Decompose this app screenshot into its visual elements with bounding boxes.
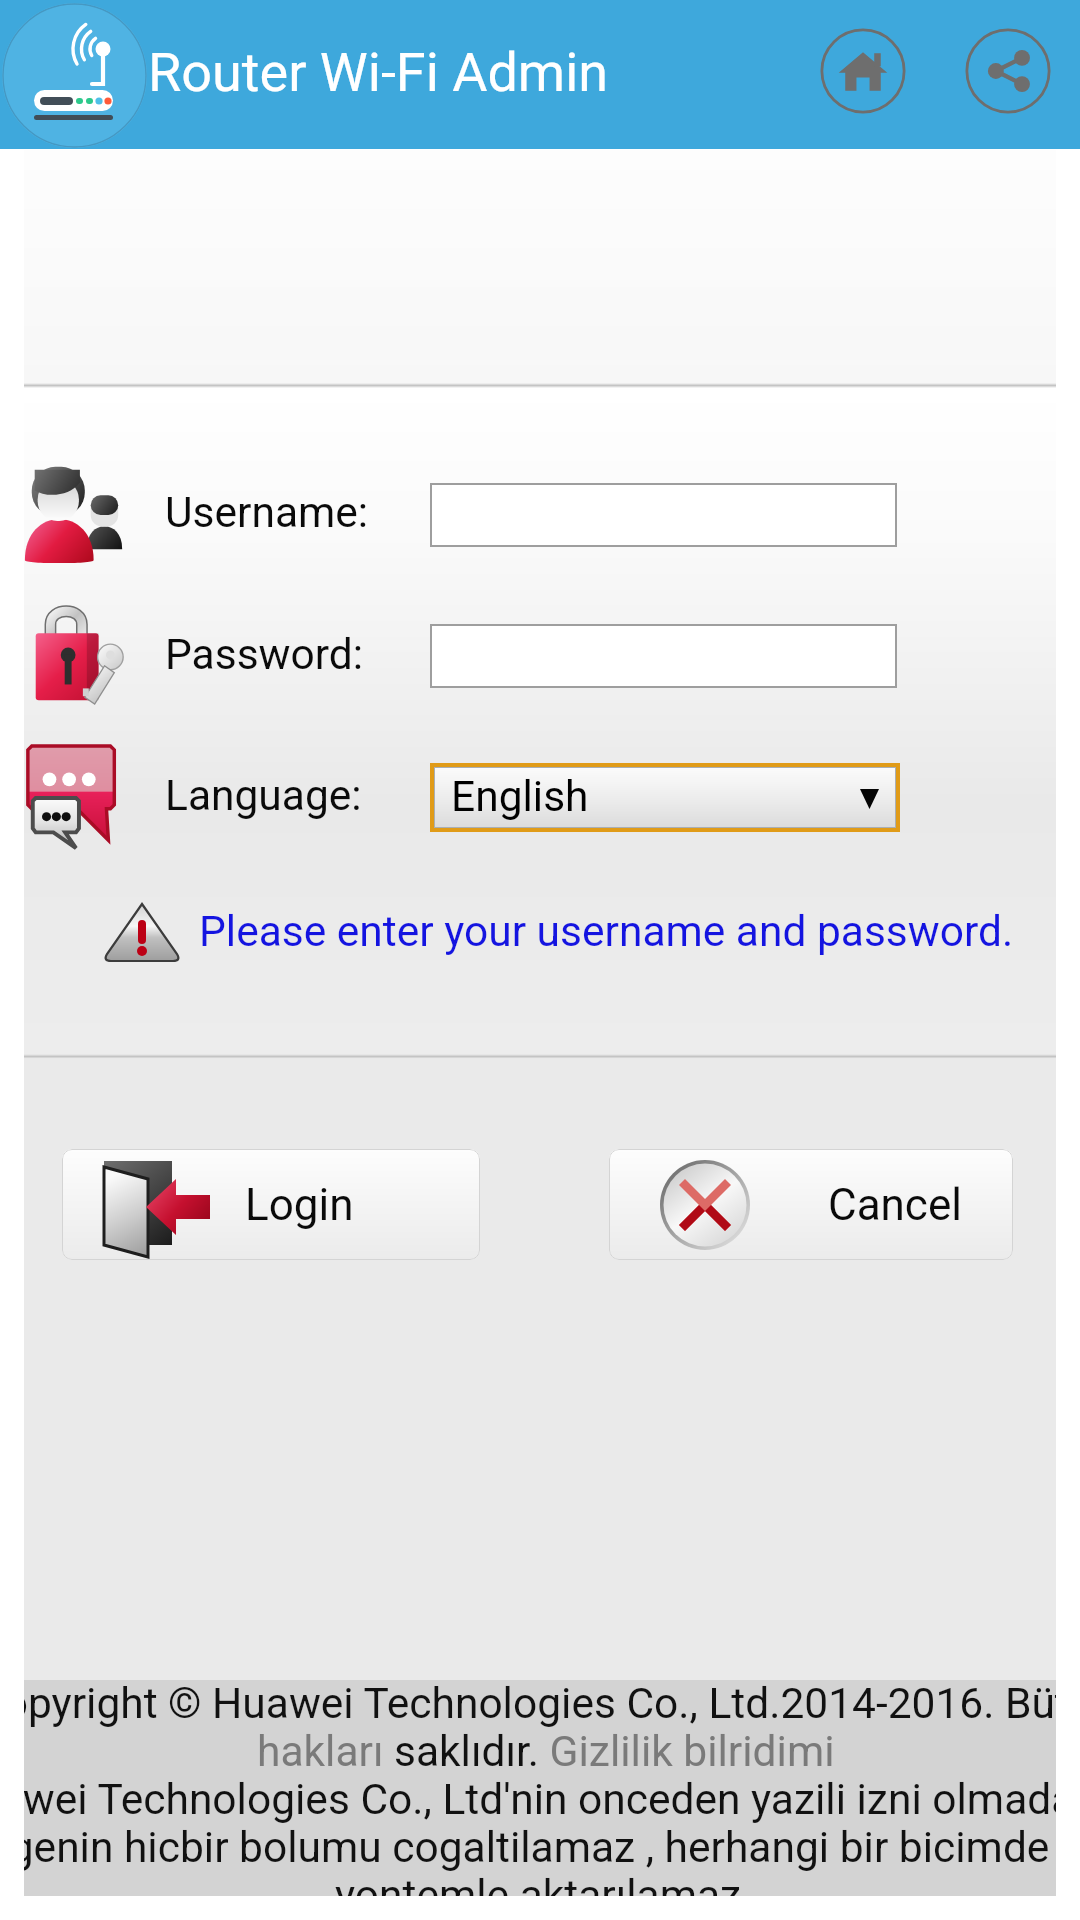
button[interactable]: Text field — [430, 483, 897, 547]
staticText: Login — [245, 1179, 354, 1231]
staticText: hakları saklıdır. Gizlilik bilridimi — [257, 1727, 835, 1777]
button[interactable]: Share — [960, 23, 1056, 119]
staticText: English — [451, 772, 589, 822]
button[interactable]: Login — [62, 1149, 480, 1260]
staticText: belgenin hicbir bolumu cogaltilamaz , he… — [24, 1823, 1056, 1873]
staticText: Router Wi-Fi Admin — [148, 41, 609, 104]
button[interactable]: Text field — [430, 624, 897, 688]
staticText: Cancel — [828, 1179, 962, 1231]
staticText: yontemle aktarılamaz — [335, 1871, 742, 1896]
button[interactable]: Cancel — [609, 1149, 1013, 1260]
button[interactable]: English — [435, 768, 895, 827]
staticText: Username: — [165, 488, 369, 538]
staticText: Password: — [165, 630, 364, 680]
staticText: Huawei Technologies Co., Ltd'nin onceden… — [24, 1775, 1056, 1825]
staticText: Language: — [165, 771, 362, 821]
button[interactable]: Home — [815, 23, 911, 119]
staticText: Copyright © Huawei Technologies Co., Ltd… — [24, 1679, 1056, 1729]
staticText: Please enter your username and password. — [199, 907, 1014, 957]
button[interactable]: App icon — [2, 3, 147, 148]
